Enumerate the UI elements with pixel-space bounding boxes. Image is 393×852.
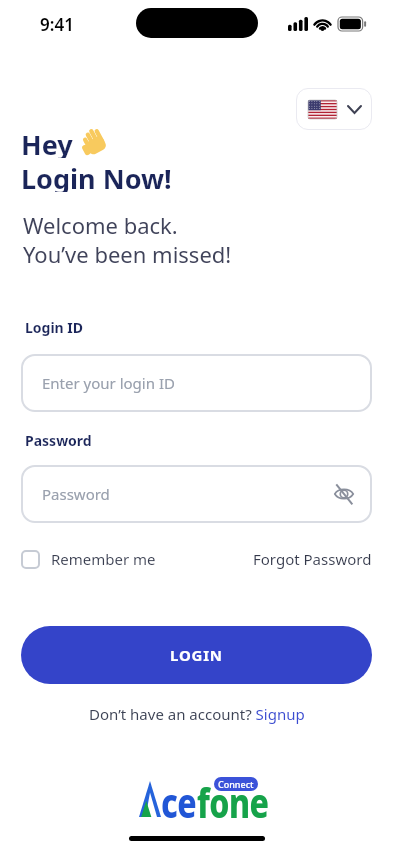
staticText: Password <box>25 431 92 450</box>
button[interactable]: Password <box>21 465 372 523</box>
button[interactable] <box>21 550 40 569</box>
staticText: Remember me <box>51 549 156 569</box>
staticText: Welcome back. You’ve been missed! <box>23 210 232 269</box>
staticText: Don’t have an account? Signup <box>89 704 305 724</box>
staticText: Connect <box>218 778 254 790</box>
staticText: Login Now! <box>21 160 172 192</box>
staticText: Hey <box>21 126 80 158</box>
staticText: Login ID <box>25 318 84 337</box>
button[interactable]: Don’t have an account? Signup <box>89 704 305 724</box>
staticText: Enter your login ID <box>42 373 175 393</box>
staticText: fone <box>197 773 269 831</box>
staticText: 9:41 <box>40 13 74 36</box>
button[interactable]: Enter your login ID <box>21 354 372 412</box>
staticText: Forgot Password <box>253 549 372 569</box>
button[interactable]: Forgot Password <box>253 549 372 569</box>
staticText: LOGIN <box>170 645 223 665</box>
button[interactable] <box>296 88 372 130</box>
staticText: Password <box>42 484 110 504</box>
button[interactable]: LOGIN <box>21 626 372 684</box>
staticText: ce <box>161 773 197 831</box>
